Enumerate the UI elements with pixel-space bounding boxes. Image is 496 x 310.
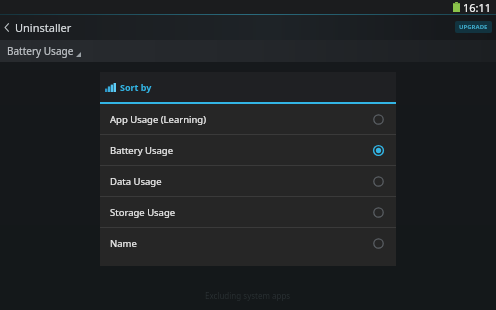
button[interactable]: UPGRADE — [455, 21, 492, 33]
staticText: Sort by — [120, 81, 152, 93]
staticText: Uninstaller — [15, 20, 72, 35]
staticText: Name — [110, 237, 137, 250]
button[interactable]: Battery Usage — [0, 42, 89, 60]
button[interactable]: Storage Usage — [100, 197, 396, 227]
button[interactable]: Data Usage — [100, 166, 396, 196]
staticText: Battery Usage — [7, 44, 74, 58]
staticText: App Usage (Learning) — [110, 113, 207, 126]
staticText: Data Usage — [110, 175, 162, 188]
staticText: Battery Usage — [110, 144, 173, 157]
button[interactable]: App Usage (Learning) — [100, 104, 396, 134]
button[interactable]: Name — [100, 228, 396, 258]
staticText: 16:11 — [463, 0, 492, 14]
staticText: Excluding system apps — [205, 290, 291, 301]
button[interactable]: Battery Usage — [100, 135, 396, 165]
staticText: UPGRADE — [459, 23, 488, 31]
button[interactable]: Uninstaller — [0, 17, 80, 38]
staticText: Storage Usage — [110, 206, 176, 219]
